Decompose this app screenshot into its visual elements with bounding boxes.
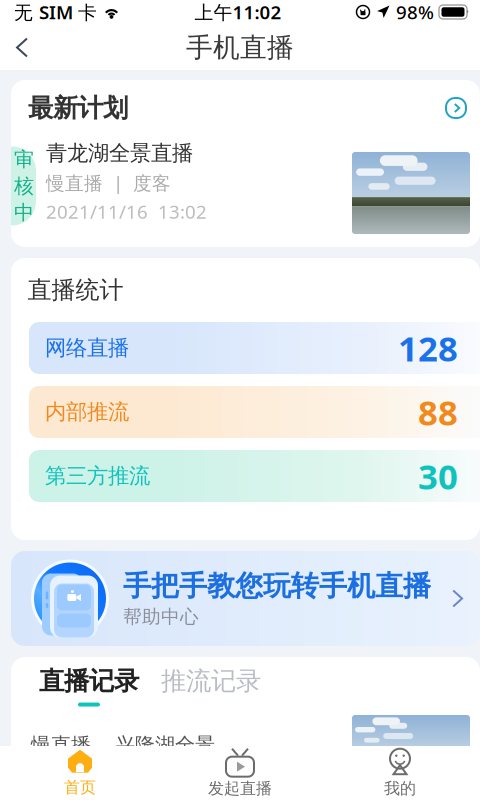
staticText: 最新计划 <box>28 92 128 123</box>
staticText: 无 SIM 卡 <box>14 0 97 24</box>
staticText: 审 <box>14 147 34 172</box>
staticText: 中 <box>14 200 34 225</box>
staticText: 推流记录 <box>161 665 261 696</box>
staticText: 直播统计 <box>27 275 123 305</box>
staticText: 手机直播 <box>186 31 294 64</box>
staticText: 青龙湖全景直播 <box>46 140 193 166</box>
button[interactable]: 直播记录 <box>39 665 139 706</box>
staticText: 发起直播 <box>208 779 272 798</box>
staticText: 核 <box>14 174 34 198</box>
staticText: 帮助中心 <box>123 605 199 628</box>
staticText: 手把手教您玩转手机直播 <box>123 569 431 603</box>
staticText: 128 <box>398 325 458 371</box>
staticText: 首页 <box>64 778 96 797</box>
staticText: 上午11:02 <box>194 0 281 24</box>
staticText: 88 <box>418 389 458 435</box>
button[interactable]: 首页 <box>0 746 160 800</box>
staticText: 内部推流 <box>45 399 129 425</box>
button[interactable]: 手把手教您玩转手机直播 <box>11 551 480 646</box>
button[interactable]: 更多 <box>439 91 473 125</box>
staticText: 98% <box>396 0 434 24</box>
button[interactable]: 发起直播 <box>160 746 320 800</box>
staticText: 2021/11/16 13:02 <box>46 199 207 224</box>
staticText: 我的 <box>384 779 416 798</box>
staticText: 第三方推流 <box>45 463 150 489</box>
button[interactable]: 返回 <box>0 25 44 69</box>
staticText: 30 <box>418 453 458 499</box>
staticText: 慢直播 兴隆湖全景 <box>31 733 215 757</box>
staticText: 直播记录 <box>39 665 139 696</box>
button[interactable]: 我的 <box>320 746 480 800</box>
staticText: 网络直播 <box>45 335 129 361</box>
button[interactable]: 推流记录 <box>161 665 261 706</box>
staticText: 慢直播 | 度客 <box>46 170 171 195</box>
